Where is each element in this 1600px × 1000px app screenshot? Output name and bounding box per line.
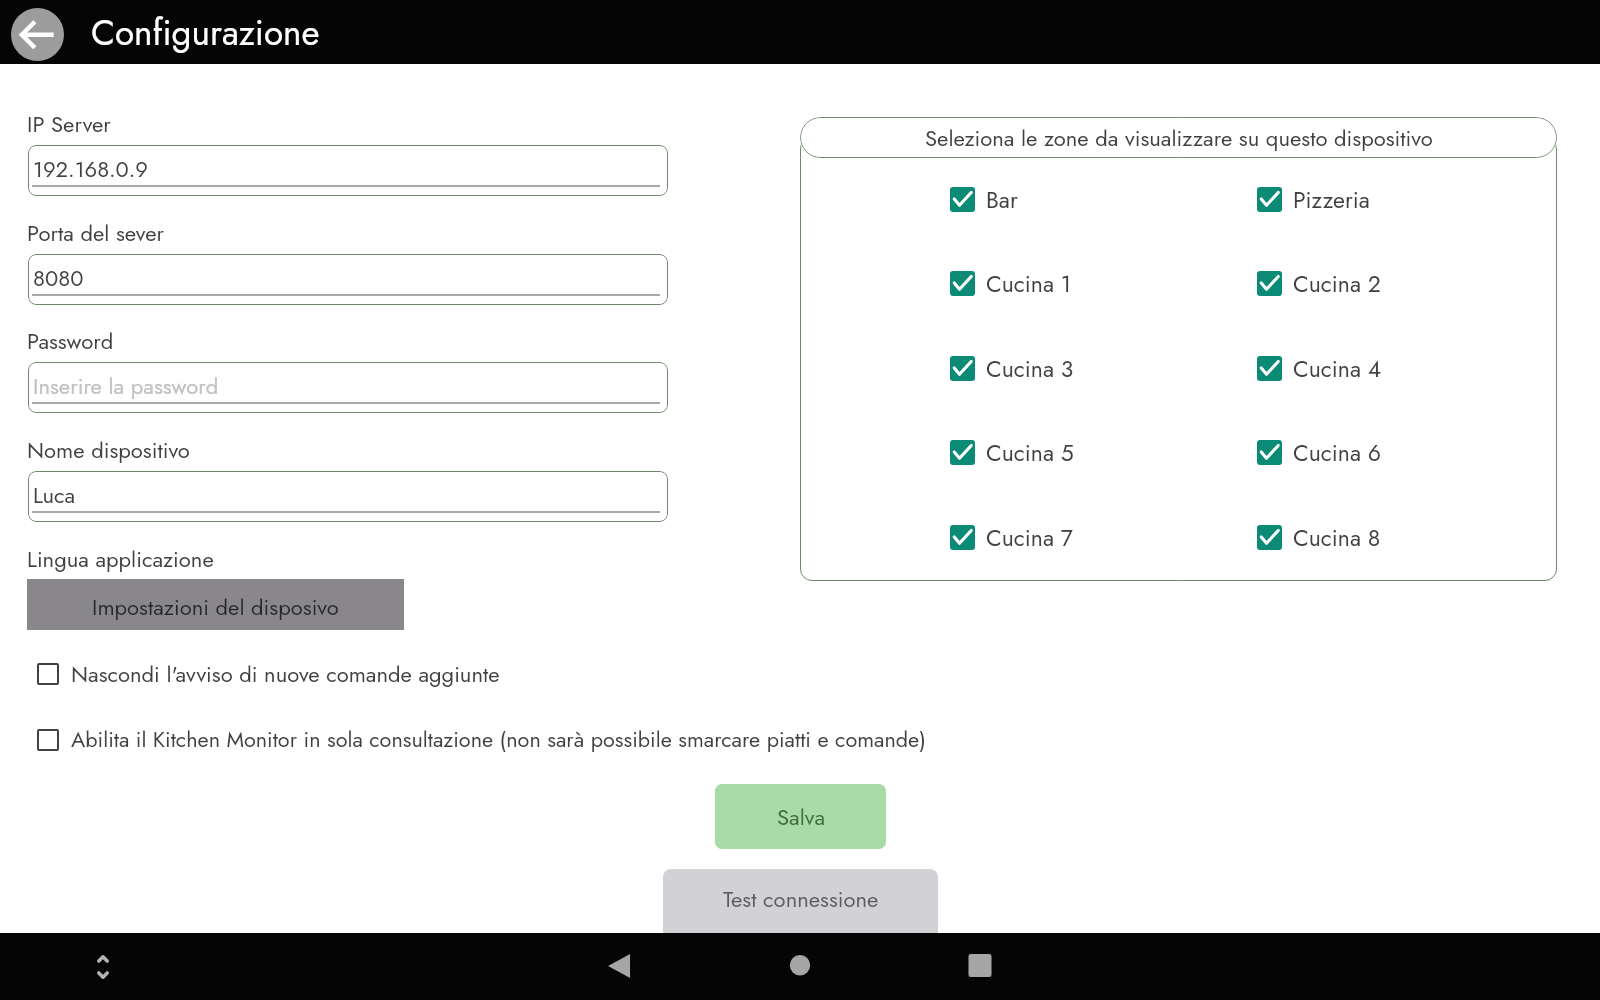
button[interactable]: Pizzeria [1257,183,1370,216]
staticText: Nome dispositivo [27,434,190,466]
staticText: Nascondi l'avviso di nuove comande aggiu… [71,658,500,690]
button[interactable]: 8080 [28,254,668,305]
button[interactable]: Cucina 5 [950,436,1074,469]
button[interactable]: Switch input method [82,946,124,988]
button[interactable]: Back [11,8,64,61]
button[interactable]: Cucina 4 [1257,352,1382,385]
button[interactable]: Seleziona le zone da visualizzare su que… [800,117,1557,158]
button[interactable]: Salva [715,784,886,849]
button[interactable]: Cucina 7 [950,521,1073,554]
staticText: Configurazione [91,8,320,59]
staticText: Cucina 7 [986,521,1073,554]
staticText: Test connessione [723,883,879,915]
button[interactable]: Inserire la password [28,362,668,413]
button[interactable]: Back [593,941,641,989]
staticText: Pizzeria [1293,183,1370,216]
staticText: Cucina 8 [1293,521,1381,554]
staticText: Cucina 2 [1293,267,1381,300]
staticText: Cucina 5 [986,436,1074,469]
staticText: Cucina 1 [986,267,1072,300]
button[interactable]: Recent apps [956,941,1004,989]
staticText: Cucina 4 [1293,352,1382,385]
staticText: Salva [777,801,825,833]
button[interactable]: Impostazioni del disposivo [27,579,404,630]
staticText: 8080 [33,262,84,294]
button[interactable]: Cucina 3 [950,352,1074,385]
button[interactable]: Cucina 6 [1257,436,1382,469]
staticText: Cucina 3 [986,352,1074,385]
button[interactable]: Cucina 1 [950,267,1072,300]
staticText: Porta del sever [27,217,165,249]
button[interactable]: Bar [950,183,1018,216]
button[interactable]: Abilita il Kitchen Monitor in sola consu… [37,724,926,755]
button[interactable]: Home [776,941,824,989]
button[interactable]: Cucina 8 [1257,521,1381,554]
staticText: Password [27,325,114,357]
staticText: IP Server [27,108,111,140]
button[interactable]: Nascondi l'avviso di nuove comande aggiu… [37,658,500,690]
staticText: Abilita il Kitchen Monitor in sola consu… [71,724,926,755]
button[interactable]: Cucina 2 [1257,267,1381,300]
staticText: Seleziona le zone da visualizzare su que… [925,122,1433,154]
button[interactable]: Luca [28,471,668,522]
staticText: Luca [33,479,76,511]
staticText: Inserire la password [33,370,219,402]
staticText: Cucina 6 [1293,436,1382,469]
staticText: Bar [986,183,1018,216]
button[interactable]: Test connessione [663,869,938,949]
staticText: Lingua applicazione [27,543,214,575]
staticText: 192.168.0.9 [33,153,149,185]
staticText: Impostazioni del disposivo [92,591,339,623]
button[interactable]: 192.168.0.9 [28,145,668,196]
